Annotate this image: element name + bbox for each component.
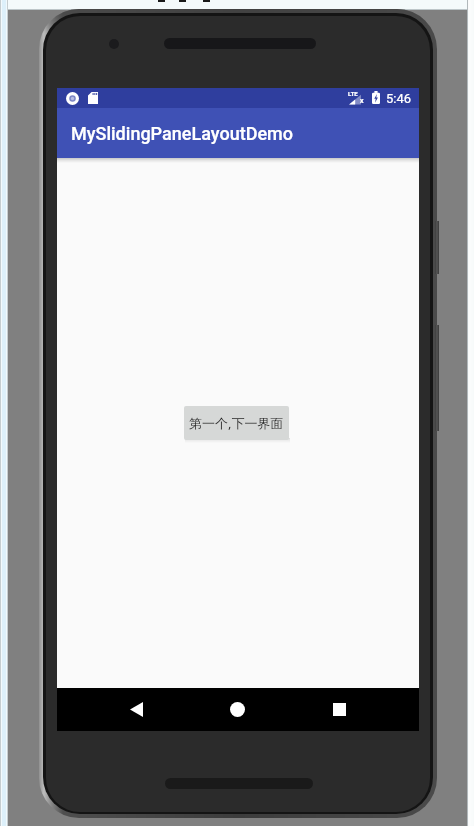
staticText: x [360, 97, 364, 105]
button[interactable]: Recent apps [319, 688, 359, 731]
button[interactable]: Home [217, 688, 257, 731]
staticText: MySlidingPaneLayoutDemo [71, 123, 294, 144]
button[interactable]: 第一个,下一界面 [184, 406, 289, 440]
staticText: LTE [348, 90, 358, 97]
staticText: 5:46 [386, 91, 412, 106]
staticText: 第一个,下一界面 [189, 414, 284, 432]
button[interactable]: Back [116, 688, 156, 731]
